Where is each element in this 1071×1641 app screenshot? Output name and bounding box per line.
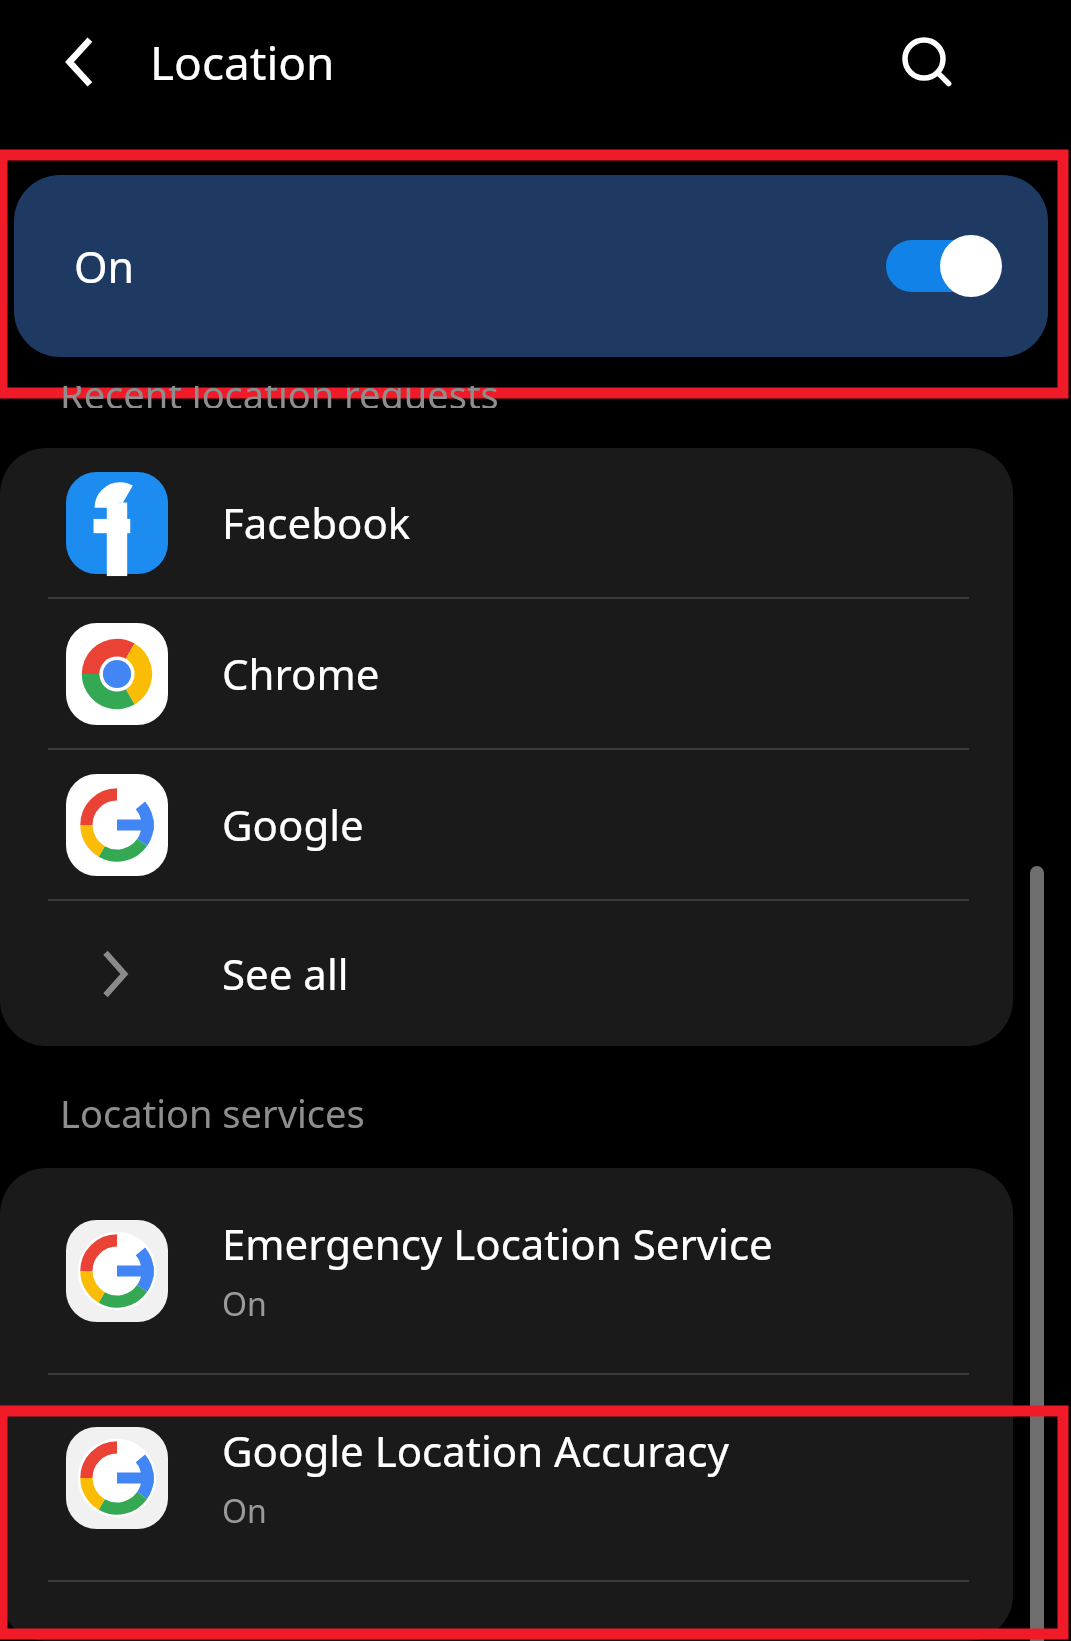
button[interactable]: Emergency Location Service <box>0 1168 1013 1373</box>
button[interactable]: Google <box>0 750 1013 899</box>
staticText: Google <box>222 796 364 853</box>
staticText: On <box>74 237 135 296</box>
staticText: Location <box>150 31 335 94</box>
staticText: Emergency Location Service <box>222 1215 773 1272</box>
staticText: Facebook <box>222 494 411 551</box>
staticText: Location services <box>60 1087 365 1139</box>
staticText: Recent location requests <box>60 386 499 408</box>
button[interactable]: Google Location Accuracy <box>0 1375 1013 1580</box>
staticText: On <box>222 1489 267 1533</box>
button[interactable]: See all <box>0 901 1013 1046</box>
staticText: Chrome <box>222 645 380 702</box>
button[interactable]: On <box>14 175 1048 357</box>
button[interactable]: Facebook <box>0 448 1013 597</box>
button[interactable]: Back <box>44 26 116 98</box>
staticText: See all <box>222 945 349 1002</box>
staticText: Google Location Accuracy <box>222 1422 729 1479</box>
button[interactable]: Chrome <box>0 599 1013 748</box>
button[interactable]: Search <box>886 22 966 102</box>
staticText: On <box>222 1282 267 1326</box>
